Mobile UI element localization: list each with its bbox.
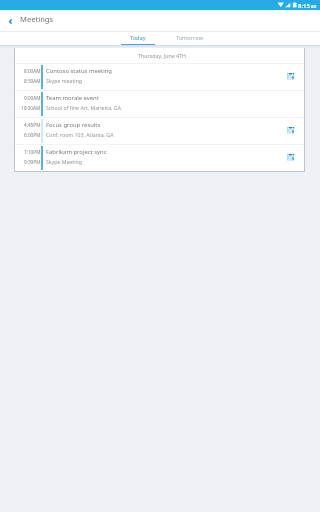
staticText: 8:15: [298, 2, 310, 10]
staticText: Contoso status meeting: [46, 67, 112, 75]
staticText: Fabrikam project sync: [46, 148, 107, 156]
staticText: 6:00PM: [24, 132, 41, 138]
staticText: Meetings: [20, 14, 54, 24]
staticText: Conf. room 103, Atlanta, GA: [46, 131, 114, 138]
button[interactable]: Today: [112, 32, 164, 45]
button[interactable]: 7:10PM: [15, 145, 304, 171]
button[interactable]: 4:45PM: [15, 118, 304, 144]
staticText: 7:10PM: [24, 149, 41, 155]
staticText: Skype meeting: [46, 77, 83, 84]
staticText: AM: [311, 4, 317, 9]
button[interactable]: Back: [0, 10, 20, 32]
staticText: 9:30PM: [24, 159, 41, 165]
staticText: Tomorrow: [176, 34, 203, 42]
staticText: Skype Meeting: [46, 158, 82, 165]
staticText: 8:00AM: [24, 68, 41, 74]
button[interactable]: Join Skype meeting: [284, 123, 298, 137]
staticText: 9:00AM: [24, 95, 41, 101]
staticText: Team morale event: [46, 94, 99, 102]
button[interactable]: 8:00AM: [15, 64, 304, 90]
staticText: Focus group results: [46, 121, 101, 129]
button[interactable]: Join Skype meeting: [284, 150, 298, 164]
staticText: 4:45PM: [24, 122, 41, 128]
button[interactable]: Join Skype meeting: [284, 69, 298, 83]
staticText: 8:30AM: [24, 78, 41, 84]
staticText: 10:00AM: [21, 105, 41, 111]
staticText: Thursday, June 4TH: [138, 52, 186, 59]
staticText: School of fine Art, Marietta, GA: [46, 104, 121, 111]
button[interactable]: 9:00AM: [15, 91, 304, 117]
staticText: Today: [130, 34, 146, 42]
button[interactable]: Tomorrow: [163, 32, 215, 45]
